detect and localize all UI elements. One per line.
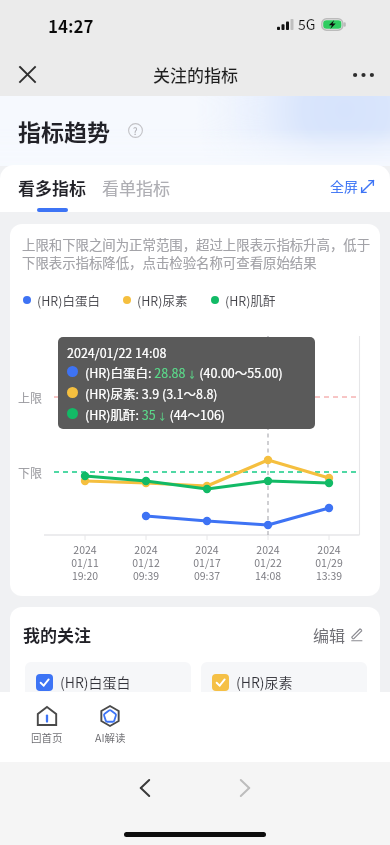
button[interactable]: More options	[345, 56, 382, 93]
staticText: 2024 01/29 13:39	[303, 542, 355, 583]
button[interactable]: (HR)尿素	[123, 291, 188, 309]
staticText: 5G	[298, 14, 316, 34]
button[interactable]: 全屏	[330, 176, 374, 196]
staticText: 看多指标	[18, 175, 86, 200]
staticText: (HR)尿素	[137, 291, 188, 309]
button[interactable]: 看单指标	[102, 165, 170, 190]
staticText: 2024 01/17 09:37	[181, 542, 233, 583]
button[interactable]: (HR)肌酐	[211, 291, 276, 309]
staticText: 回首页	[31, 730, 63, 745]
button[interactable]: AI解读	[79, 692, 141, 745]
staticText: ?	[133, 124, 138, 138]
button[interactable]: Close	[9, 56, 46, 93]
staticText: 编辑	[313, 623, 346, 646]
staticText: (HR)肌酐	[225, 291, 276, 309]
staticText: 14:27	[48, 13, 94, 38]
staticText: AI解读	[95, 730, 126, 745]
staticText: (HR)尿素: 3.9 (3.1～8.8)	[85, 384, 218, 402]
button[interactable]: (HR)白蛋白	[23, 291, 100, 309]
staticText: 下限	[18, 464, 43, 481]
button[interactable]: Back	[123, 766, 167, 810]
staticText: (HR)肌酐: 35 ↓ (44～106)	[85, 405, 226, 423]
staticText: 2024 01/12 09:39	[120, 542, 172, 583]
staticText: (HR)白蛋白	[60, 672, 131, 692]
button[interactable]: 回首页	[16, 692, 78, 745]
staticText: 指标趋势	[18, 114, 110, 147]
staticText: (HR)尿素	[236, 672, 293, 692]
button[interactable]: Help	[128, 123, 143, 138]
button[interactable]: 看多指标	[18, 165, 86, 190]
staticText: 上限	[18, 389, 43, 406]
staticText: 2024/01/22 14:08	[67, 343, 167, 361]
staticText: 2024 01/11 19:20	[59, 542, 111, 583]
staticText: (HR)白蛋白	[37, 291, 100, 309]
staticText: (HR)白蛋白: 28.88 ↓ (40.00～55.00)	[85, 363, 283, 381]
staticText: 关注的指标	[153, 62, 238, 87]
staticText: 全屏	[330, 176, 358, 196]
staticText: 我的关注	[23, 622, 91, 647]
button[interactable]: Forward	[223, 766, 267, 810]
staticText: 上限和下限之间为正常范围，超过上限表示指标升高，低于下限表示指标降低，点击检验名…	[22, 234, 374, 272]
button[interactable]: 编辑	[313, 623, 363, 646]
button[interactable]: (HR)白蛋白	[25, 662, 191, 702]
staticText: 2024 01/22 14:08	[242, 542, 294, 583]
staticText: 看单指标	[102, 175, 170, 200]
button[interactable]: (HR)尿素	[201, 662, 367, 702]
